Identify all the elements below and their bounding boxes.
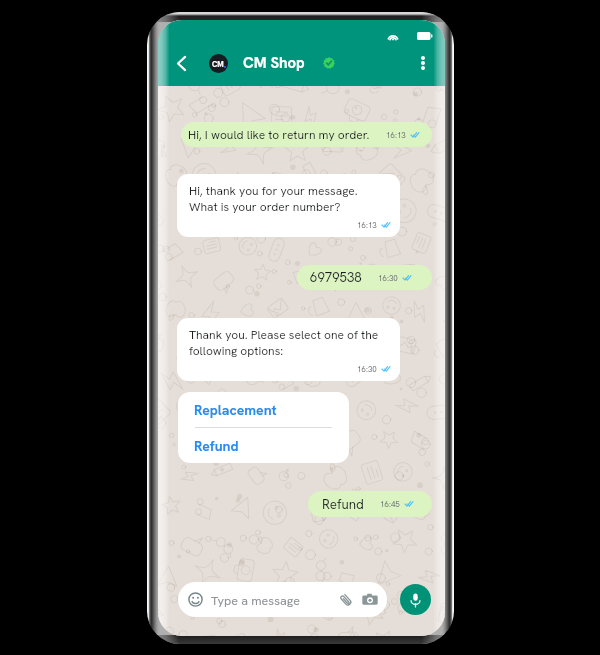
button[interactable]: 6979538: [297, 265, 432, 290]
button[interactable]: Back: [169, 51, 193, 75]
staticText: 16:45: [380, 499, 400, 509]
staticText: Hi, I would like to return my order.: [188, 127, 370, 143]
staticText: 16:13: [357, 220, 377, 230]
button[interactable]: Refund: [178, 428, 349, 463]
button[interactable]: Thank you. Please select one of the foll…: [177, 318, 400, 381]
button[interactable]: Attach file: [339, 593, 353, 607]
staticText: 16:30: [378, 273, 398, 283]
staticText: Replacement: [194, 401, 277, 419]
staticText: CM: [212, 59, 224, 69]
staticText: Refund: [194, 437, 239, 455]
staticText: Type a message: [211, 592, 300, 608]
staticText: 16:30: [357, 364, 377, 374]
button[interactable]: Type a message: [178, 582, 387, 617]
button[interactable]: Hi, thank you for your message. What is …: [177, 174, 400, 237]
button[interactable]: More options: [412, 52, 434, 74]
button[interactable]: Voice message: [400, 584, 431, 615]
button[interactable]: Camera: [362, 592, 378, 608]
staticText: 16:13: [386, 130, 406, 140]
button[interactable]: Hi, I would like to return my order.: [181, 122, 432, 147]
staticText: Refund: [322, 496, 364, 513]
staticText: CM Shop: [243, 53, 305, 73]
staticText: Hi, thank you for your message. What is …: [189, 183, 358, 214]
button[interactable]: Refund: [308, 491, 432, 517]
button[interactable]: Replacement: [178, 392, 349, 427]
staticText: Thank you. Please select one of the foll…: [189, 327, 379, 358]
staticText: 6979538: [310, 269, 362, 286]
